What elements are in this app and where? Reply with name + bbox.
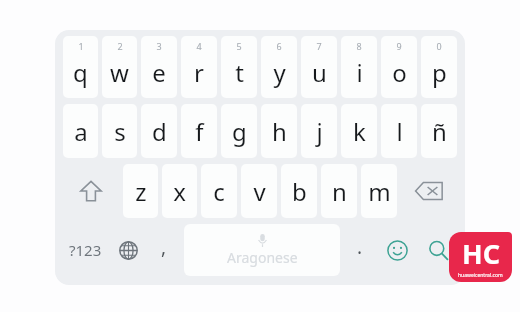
staticText: k — [353, 115, 366, 148]
button[interactable]: 3 — [141, 36, 177, 98]
button[interactable]: Change language — [109, 224, 147, 276]
staticText: d — [152, 115, 167, 148]
staticText: g — [232, 115, 247, 148]
staticText: r — [194, 56, 204, 89]
staticText: 0 — [436, 40, 442, 52]
staticText: c — [213, 175, 225, 208]
button[interactable]: 0 — [421, 36, 457, 98]
button[interactable]: s — [102, 104, 137, 158]
staticText: 9 — [396, 40, 402, 52]
button[interactable]: 4 — [181, 36, 217, 98]
button[interactable]: f — [181, 104, 217, 158]
staticText: 5 — [236, 40, 242, 52]
staticText: x — [173, 175, 186, 208]
button[interactable]: ñ — [421, 104, 457, 158]
staticText: z — [135, 175, 147, 208]
staticText: b — [292, 175, 307, 208]
staticText: Aragonese — [227, 248, 298, 267]
staticText: l — [396, 115, 403, 148]
staticText: q — [73, 56, 88, 89]
staticText: 1 — [78, 40, 84, 52]
staticText: h — [272, 115, 287, 148]
button[interactable]: j — [301, 104, 337, 158]
button[interactable]: Shift — [63, 164, 119, 218]
button[interactable]: Space, Aragonese — [184, 224, 340, 276]
button[interactable]: 5 — [221, 36, 257, 98]
staticText: y — [273, 56, 286, 89]
staticText: e — [152, 56, 166, 89]
staticText: 2 — [117, 40, 123, 52]
staticText: huaweicentral.com — [458, 272, 503, 279]
button[interactable]: h — [261, 104, 297, 158]
staticText: i — [356, 56, 363, 89]
staticText: 4 — [196, 40, 202, 52]
button[interactable]: n — [321, 164, 357, 218]
staticText: a — [74, 115, 88, 148]
button[interactable]: 8 — [341, 36, 377, 98]
staticText: 3 — [156, 40, 162, 52]
button[interactable]: Backspace — [401, 164, 457, 218]
button[interactable]: 7 — [301, 36, 337, 98]
button[interactable]: 6 — [261, 36, 297, 98]
staticText: ñ — [432, 115, 447, 148]
staticText: . — [357, 234, 363, 260]
staticText: j — [316, 115, 323, 148]
button[interactable]: x — [162, 164, 197, 218]
button[interactable]: b — [281, 164, 317, 218]
button[interactable]: g — [221, 104, 257, 158]
button[interactable]: z — [123, 164, 158, 218]
button[interactable]: 1 — [63, 36, 98, 98]
button[interactable]: Emoji — [377, 224, 417, 276]
staticText: s — [114, 115, 126, 148]
staticText: , — [161, 234, 167, 260]
button[interactable]: m — [361, 164, 397, 218]
button[interactable]: , — [147, 224, 181, 276]
button[interactable]: Search — [417, 224, 459, 276]
button[interactable]: d — [141, 104, 177, 158]
staticText: f — [195, 115, 204, 148]
button[interactable]: k — [341, 104, 377, 158]
staticText: 7 — [316, 40, 322, 52]
button[interactable]: ?123 — [61, 224, 109, 276]
staticText: m — [368, 175, 391, 208]
button[interactable]: . — [343, 224, 377, 276]
staticText: n — [332, 175, 347, 208]
staticText: o — [392, 56, 407, 89]
staticText: u — [312, 56, 327, 89]
staticText: 6 — [276, 40, 282, 52]
staticText: HC — [462, 235, 500, 272]
button[interactable]: v — [241, 164, 277, 218]
staticText: ?123 — [69, 240, 102, 260]
staticText: v — [253, 175, 266, 208]
button[interactable]: a — [63, 104, 98, 158]
button[interactable]: 9 — [381, 36, 417, 98]
staticText: 8 — [356, 40, 362, 52]
button[interactable]: l — [381, 104, 417, 158]
staticText: p — [432, 56, 447, 89]
button[interactable]: c — [201, 164, 237, 218]
staticText: t — [235, 56, 244, 89]
staticText: w — [110, 56, 129, 89]
button[interactable]: 2 — [102, 36, 137, 98]
